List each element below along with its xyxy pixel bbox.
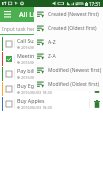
staticText: Modified (Newest first) — [48, 67, 102, 74]
staticText: 2016/06/03 18:30 — [21, 45, 52, 50]
button[interactable]: Buy Eggs — [0, 81, 103, 96]
staticText: Call Susan — [17, 37, 43, 44]
staticText: Z-A — [48, 53, 56, 60]
button[interactable]: Created (Newest first) — [34, 7, 103, 21]
staticText: A-Z — [48, 39, 56, 46]
button[interactable]: A-Z — [34, 35, 103, 49]
button[interactable]: Meeting — [0, 51, 103, 66]
staticText: All Lists — [19, 10, 45, 20]
button[interactable]: Modified (Oldest first) — [34, 77, 103, 91]
staticText: 2016/06/03 18:30 — [21, 75, 52, 80]
staticText: Modified (Oldest first) — [48, 81, 99, 88]
staticText: Buy Eggs — [17, 82, 40, 89]
button[interactable]: Z-A — [34, 49, 103, 63]
button[interactable]: Open navigation menu — [0, 7, 15, 22]
button[interactable]: Created (Oldest first) — [34, 21, 103, 35]
button[interactable]: Input task here — [0, 22, 103, 36]
staticText: Input task here — [2, 26, 38, 33]
button[interactable]: Buy Apples — [0, 96, 103, 111]
button[interactable]: Delete task — [90, 96, 103, 111]
staticText: 17:31 — [89, 1, 101, 7]
button[interactable]: Modified (Newest first) — [34, 63, 103, 77]
staticText: 2016/06/03 18:30 — [21, 105, 52, 110]
staticText: Created (Oldest first) — [48, 25, 97, 32]
button[interactable]: Pay bills — [0, 66, 103, 81]
staticText: 2016/06/03 18:30 — [21, 90, 52, 95]
button[interactable]: Delete task — [90, 66, 103, 81]
staticText: 26% — [76, 1, 84, 6]
staticText: Meeting — [17, 52, 38, 59]
button[interactable]: Delete task — [90, 81, 103, 96]
staticText: 2016/06/03 18:30 — [21, 60, 52, 65]
staticText: Pay bills — [17, 67, 38, 74]
button[interactable]: Call Susan — [0, 36, 103, 51]
staticText: Created (Newest first) — [48, 11, 99, 18]
staticText: Buy Apples — [17, 97, 45, 104]
